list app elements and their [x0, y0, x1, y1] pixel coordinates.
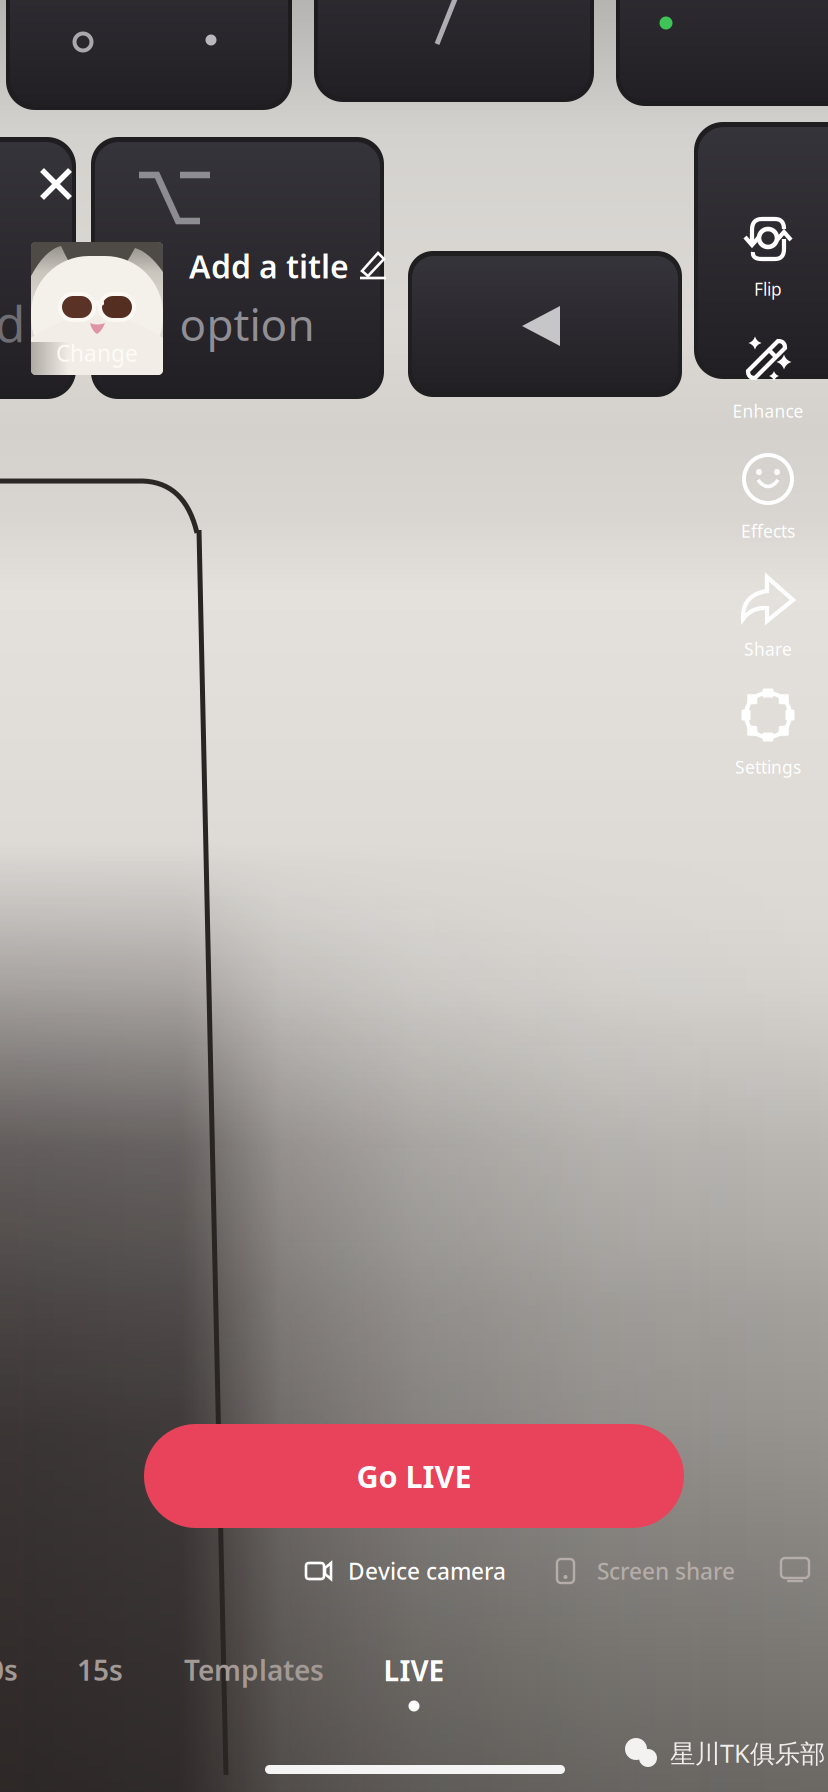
staticText: Add a title: [189, 245, 349, 287]
button[interactable]: 15s: [50, 1642, 150, 1698]
staticText: 15s: [77, 1651, 123, 1689]
staticText: 60s: [0, 1651, 18, 1689]
button[interactable]: External display: [770, 1546, 820, 1596]
button[interactable]: Go LIVE: [144, 1424, 684, 1528]
button[interactable]: Enhance: [716, 330, 820, 422]
staticText: Share: [744, 637, 792, 660]
button[interactable]: LIVE: [354, 1642, 474, 1722]
staticText: Settings: [735, 755, 801, 778]
staticText: Go LIVE: [356, 1456, 471, 1496]
button[interactable]: Close: [18, 146, 94, 222]
staticText: Change: [56, 338, 138, 368]
button[interactable]: Templates: [164, 1642, 344, 1698]
staticText: Flip: [754, 277, 782, 300]
button[interactable]: Add a title: [189, 240, 388, 292]
staticText: Screen share: [597, 1556, 735, 1586]
button[interactable]: Share: [716, 568, 820, 660]
button[interactable]: 60s: [0, 1642, 45, 1698]
staticText: Device camera: [348, 1556, 506, 1586]
button[interactable]: Flip: [716, 208, 820, 300]
button[interactable]: Screen share: [556, 1546, 735, 1596]
staticText: option: [179, 295, 314, 353]
staticText: 星川TK俱乐部: [670, 1736, 825, 1770]
button[interactable]: Change: [31, 242, 163, 375]
staticText: d: [0, 290, 25, 356]
button[interactable]: Settings: [716, 686, 820, 778]
staticText: Templates: [184, 1651, 324, 1689]
staticText: LIVE: [383, 1652, 444, 1689]
button[interactable]: Effects: [716, 450, 820, 542]
staticText: Effects: [741, 519, 795, 542]
button[interactable]: Device camera: [303, 1546, 506, 1596]
staticText: Enhance: [732, 399, 803, 422]
